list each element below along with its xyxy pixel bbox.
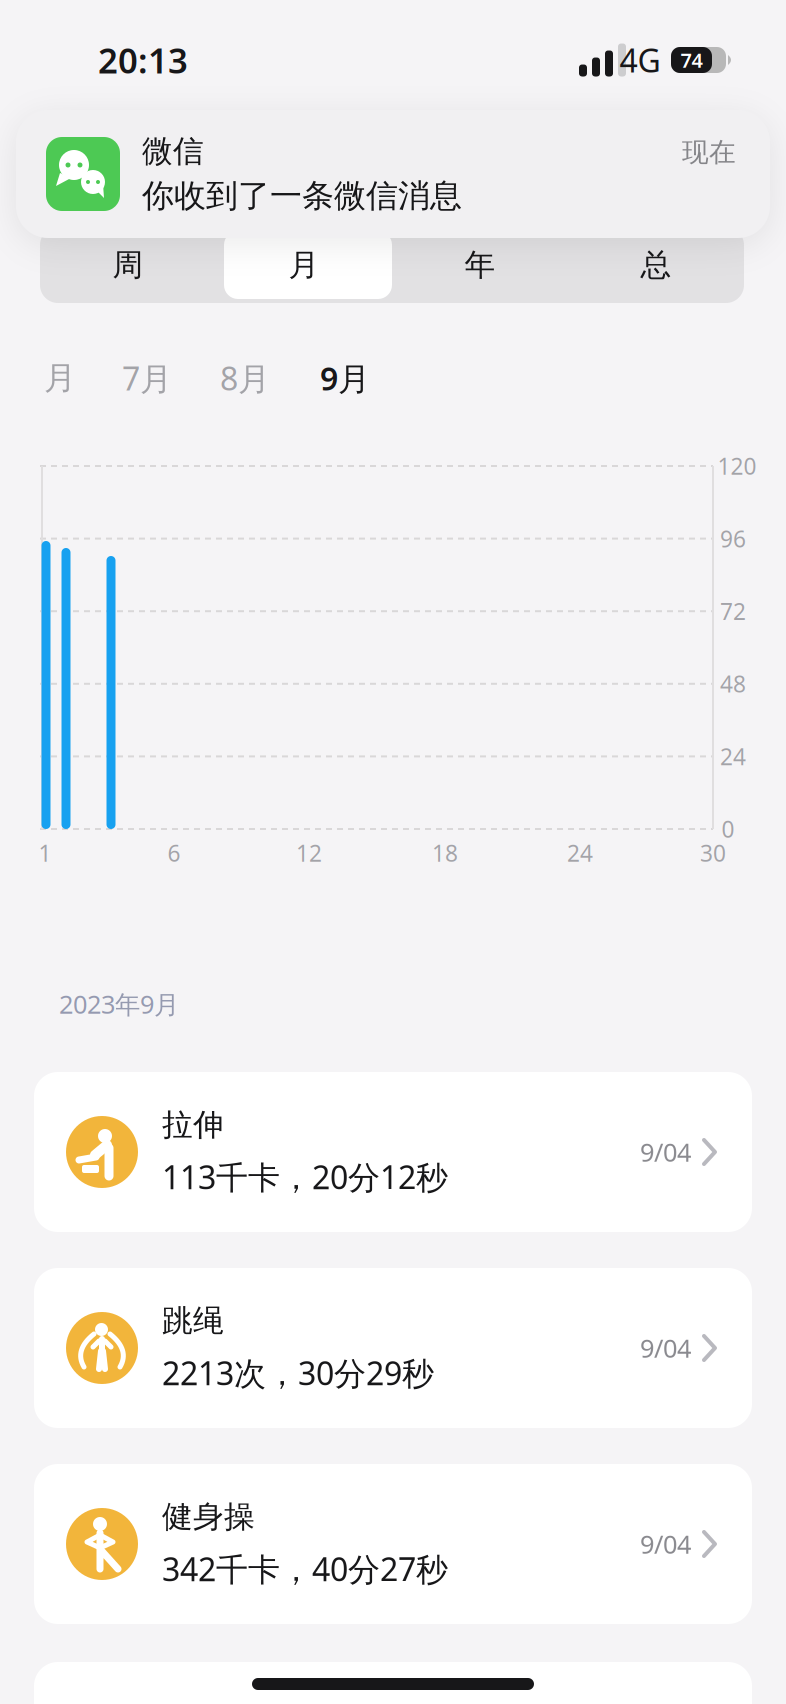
staticText: 8月 [220, 357, 270, 399]
staticText: 2213次，30分29秒 [162, 1352, 434, 1394]
button[interactable]: 8月 [220, 357, 270, 399]
staticText: 9/04 [640, 1135, 691, 1169]
staticText: 4G [619, 39, 660, 81]
staticText: 72 [720, 596, 746, 626]
staticText: 9月 [320, 357, 370, 399]
button[interactable]: 9月 [320, 357, 370, 399]
button[interactable]: 跳绳 [34, 1268, 752, 1428]
staticText: 12 [296, 838, 322, 868]
staticText: 你收到了一条微信消息 [142, 176, 462, 215]
staticText: 120 [717, 451, 756, 481]
staticText: 健身操 [162, 1498, 255, 1536]
staticText: 1 [38, 838, 51, 868]
staticText: 总 [640, 246, 671, 284]
button[interactable]: 微信 [16, 110, 770, 238]
staticText: 24 [567, 838, 593, 868]
button[interactable]: 月 [216, 227, 392, 303]
staticText: 9/04 [640, 1331, 691, 1365]
staticText: 0 [721, 814, 734, 844]
staticText: 拉伸 [162, 1106, 224, 1144]
staticText: 月 [44, 358, 76, 398]
staticText: 96 [720, 523, 746, 554]
staticText: 7月 [122, 357, 172, 399]
staticText: 18 [432, 838, 458, 868]
button[interactable]: 下一条训练记录 [34, 1662, 752, 1704]
button[interactable]: 周 [40, 227, 216, 303]
staticText: 周 [112, 246, 143, 284]
staticText: 微信 [142, 132, 204, 170]
staticText: 9/04 [640, 1527, 691, 1561]
button[interactable]: 月 [224, 231, 392, 299]
button[interactable]: 7月 [122, 357, 172, 399]
staticText: 48 [720, 669, 746, 699]
staticText: 113千卡，20分12秒 [162, 1156, 448, 1198]
staticText: 年 [464, 246, 495, 284]
button[interactable]: 拉伸 [34, 1072, 752, 1232]
staticText: 月 [288, 246, 319, 284]
staticText: 现在 [682, 136, 736, 169]
staticText: 30 [700, 838, 726, 868]
staticText: 342千卡，40分27秒 [162, 1548, 448, 1590]
staticText: 2023年9月 [59, 987, 179, 1021]
staticText: 24 [720, 741, 746, 771]
button[interactable]: 年 [392, 227, 568, 303]
staticText: 74 [680, 47, 702, 73]
staticText: 跳绳 [162, 1302, 224, 1340]
button[interactable]: 健身操 [34, 1464, 752, 1624]
button[interactable]: 总 [568, 227, 744, 303]
staticText: 6 [167, 838, 180, 868]
staticText: 20:13 [98, 37, 188, 83]
button[interactable]: 月 [44, 358, 76, 398]
